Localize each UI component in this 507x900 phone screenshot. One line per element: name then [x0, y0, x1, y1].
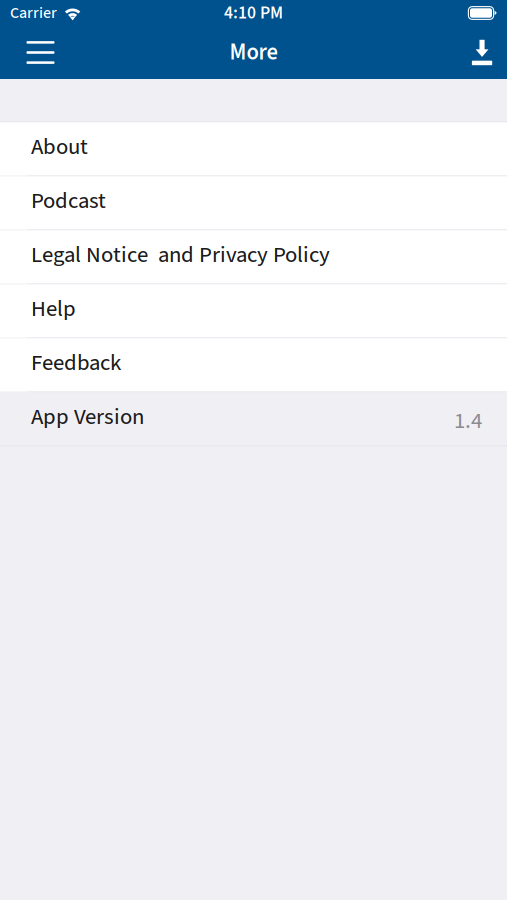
staticText: Carrier	[10, 2, 57, 24]
staticText: More	[229, 36, 277, 69]
button[interactable]: Download	[456, 26, 507, 78]
staticText: Legal Notice and Privacy Policy	[31, 239, 330, 271]
button[interactable]: Feedback	[0, 338, 507, 391]
button[interactable]: Legal Notice and Privacy Policy	[0, 230, 507, 283]
staticText: About	[31, 131, 88, 163]
button[interactable]: About	[0, 122, 507, 175]
button[interactable]: App Version	[0, 392, 507, 445]
staticText: Feedback	[31, 347, 121, 379]
staticText: 1.4	[454, 405, 482, 437]
button[interactable]: Podcast	[0, 176, 507, 229]
button[interactable]: Help	[0, 284, 507, 337]
button[interactable]: Menu	[0, 26, 70, 78]
staticText: 4:10 PM	[224, 0, 283, 26]
staticText: Help	[31, 293, 76, 325]
staticText: Podcast	[31, 185, 106, 217]
staticText: App Version	[31, 401, 144, 433]
